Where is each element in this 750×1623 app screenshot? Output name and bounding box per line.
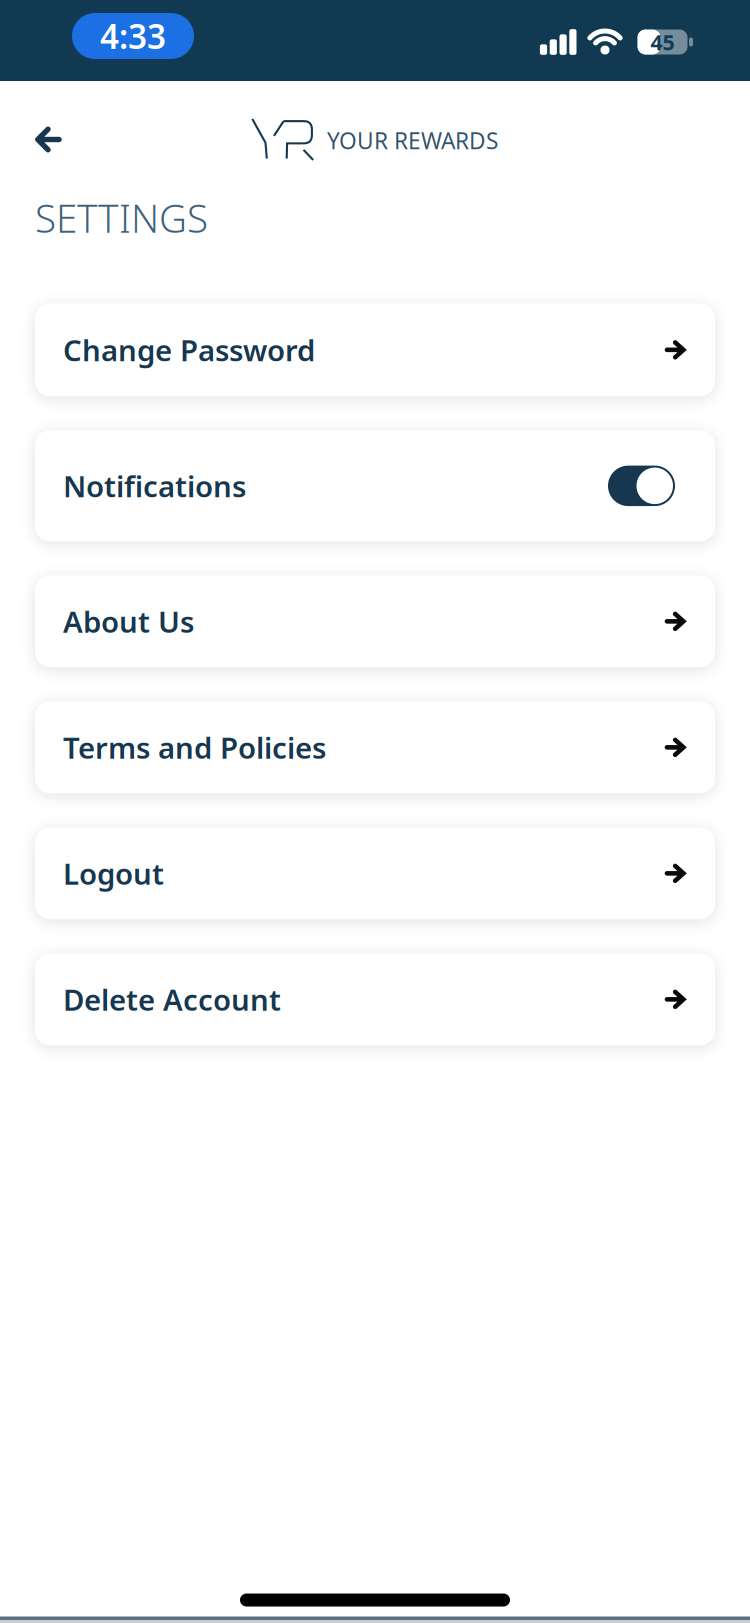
staticText: Change Password	[63, 330, 315, 369]
button[interactable]: Delete Account	[35, 953, 715, 1045]
staticText: SETTINGS	[35, 192, 208, 243]
button[interactable]: Logout	[35, 827, 715, 919]
button[interactable]: Back	[0, 118, 59, 161]
staticText: Delete Account	[63, 980, 281, 1019]
staticText: 4:33	[100, 14, 166, 58]
staticText: About Us	[63, 602, 194, 641]
button[interactable]: Notifications	[608, 466, 675, 506]
button[interactable]: Terms and Policies	[35, 701, 715, 793]
button[interactable]: About Us	[35, 575, 715, 667]
staticText: Notifications	[63, 466, 246, 505]
staticText: YOUR REWARDS	[327, 125, 498, 155]
staticText: Terms and Policies	[63, 728, 326, 767]
button[interactable]: Change Password	[35, 303, 715, 396]
staticText: Logout	[63, 854, 164, 893]
staticText: 45	[650, 28, 674, 56]
